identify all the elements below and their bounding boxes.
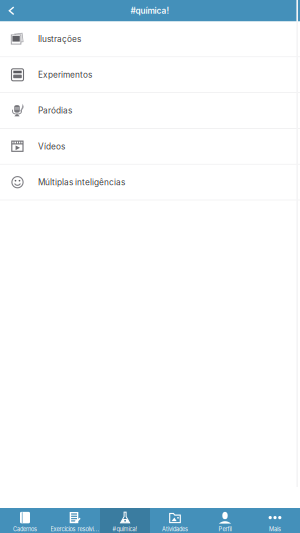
- staticText: Perfil: [218, 526, 231, 533]
- staticText: Atividades: [162, 526, 188, 533]
- staticText: #química!: [112, 526, 137, 533]
- button[interactable]: Múltiplas inteligências: [0, 165, 300, 200]
- button[interactable]: #química!: [100, 508, 150, 533]
- staticText: Mais: [269, 526, 281, 533]
- button[interactable]: Ilustrações: [0, 21, 300, 57]
- button[interactable]: Perfil: [200, 508, 250, 533]
- staticText: Exercícios resolvi...: [50, 526, 99, 533]
- staticText: Experimentos: [38, 70, 92, 80]
- staticText: Múltiplas inteligências: [38, 177, 125, 187]
- button[interactable]: Exercícios resolvi...: [50, 508, 100, 533]
- button[interactable]: Paródias: [0, 93, 300, 129]
- staticText: Cadernos: [13, 526, 37, 533]
- button[interactable]: Experimentos: [0, 57, 300, 93]
- button[interactable]: Vídeos: [0, 129, 300, 165]
- button[interactable]: Back: [0, 0, 23, 21]
- staticText: Paródias: [38, 106, 72, 116]
- staticText: Vídeos: [38, 141, 65, 151]
- staticText: #química!: [130, 6, 169, 16]
- button[interactable]: Atividades: [150, 508, 200, 533]
- staticText: Ilustrações: [38, 34, 81, 44]
- button[interactable]: Mais: [250, 508, 300, 533]
- button[interactable]: Cadernos: [0, 508, 50, 533]
